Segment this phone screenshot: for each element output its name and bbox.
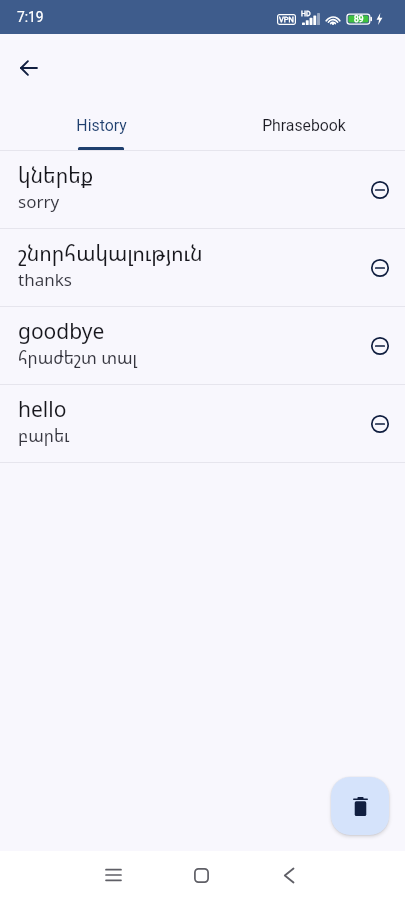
staticText: VPN xyxy=(279,15,294,24)
staticText: 7:19 xyxy=(17,9,44,25)
button[interactable]: Remove xyxy=(359,403,401,445)
button[interactable]: Back xyxy=(269,855,309,895)
button[interactable]: Clear history xyxy=(331,777,389,835)
staticText: Phrasebook xyxy=(262,116,346,135)
button[interactable]: Remove xyxy=(359,325,401,367)
button[interactable]: Remove xyxy=(359,169,401,211)
staticText: բարեւ xyxy=(18,424,70,447)
button[interactable]: History xyxy=(0,96,202,150)
staticText: goodbye xyxy=(18,317,105,346)
button[interactable]: hello xyxy=(0,385,405,462)
button[interactable]: շնորհակալություն xyxy=(0,229,405,306)
staticText: hello xyxy=(18,395,67,424)
staticText: HD xyxy=(301,10,311,18)
button[interactable]: Phrasebook xyxy=(202,96,405,150)
staticText: շնորհակալություն xyxy=(18,239,203,268)
staticText: thanks xyxy=(18,268,72,291)
button[interactable]: կներեք xyxy=(0,151,405,228)
staticText: History xyxy=(76,116,127,135)
staticText: 89 xyxy=(354,14,364,24)
button[interactable]: goodbye xyxy=(0,307,405,384)
button[interactable]: Home xyxy=(181,855,221,895)
staticText: sorry xyxy=(18,190,60,213)
staticText: հրաժեշտ տալ xyxy=(18,346,138,369)
button[interactable]: Remove xyxy=(359,247,401,289)
button[interactable]: Back xyxy=(11,50,47,86)
button[interactable]: Recent apps xyxy=(93,855,133,895)
staticText: կներեք xyxy=(18,161,94,190)
